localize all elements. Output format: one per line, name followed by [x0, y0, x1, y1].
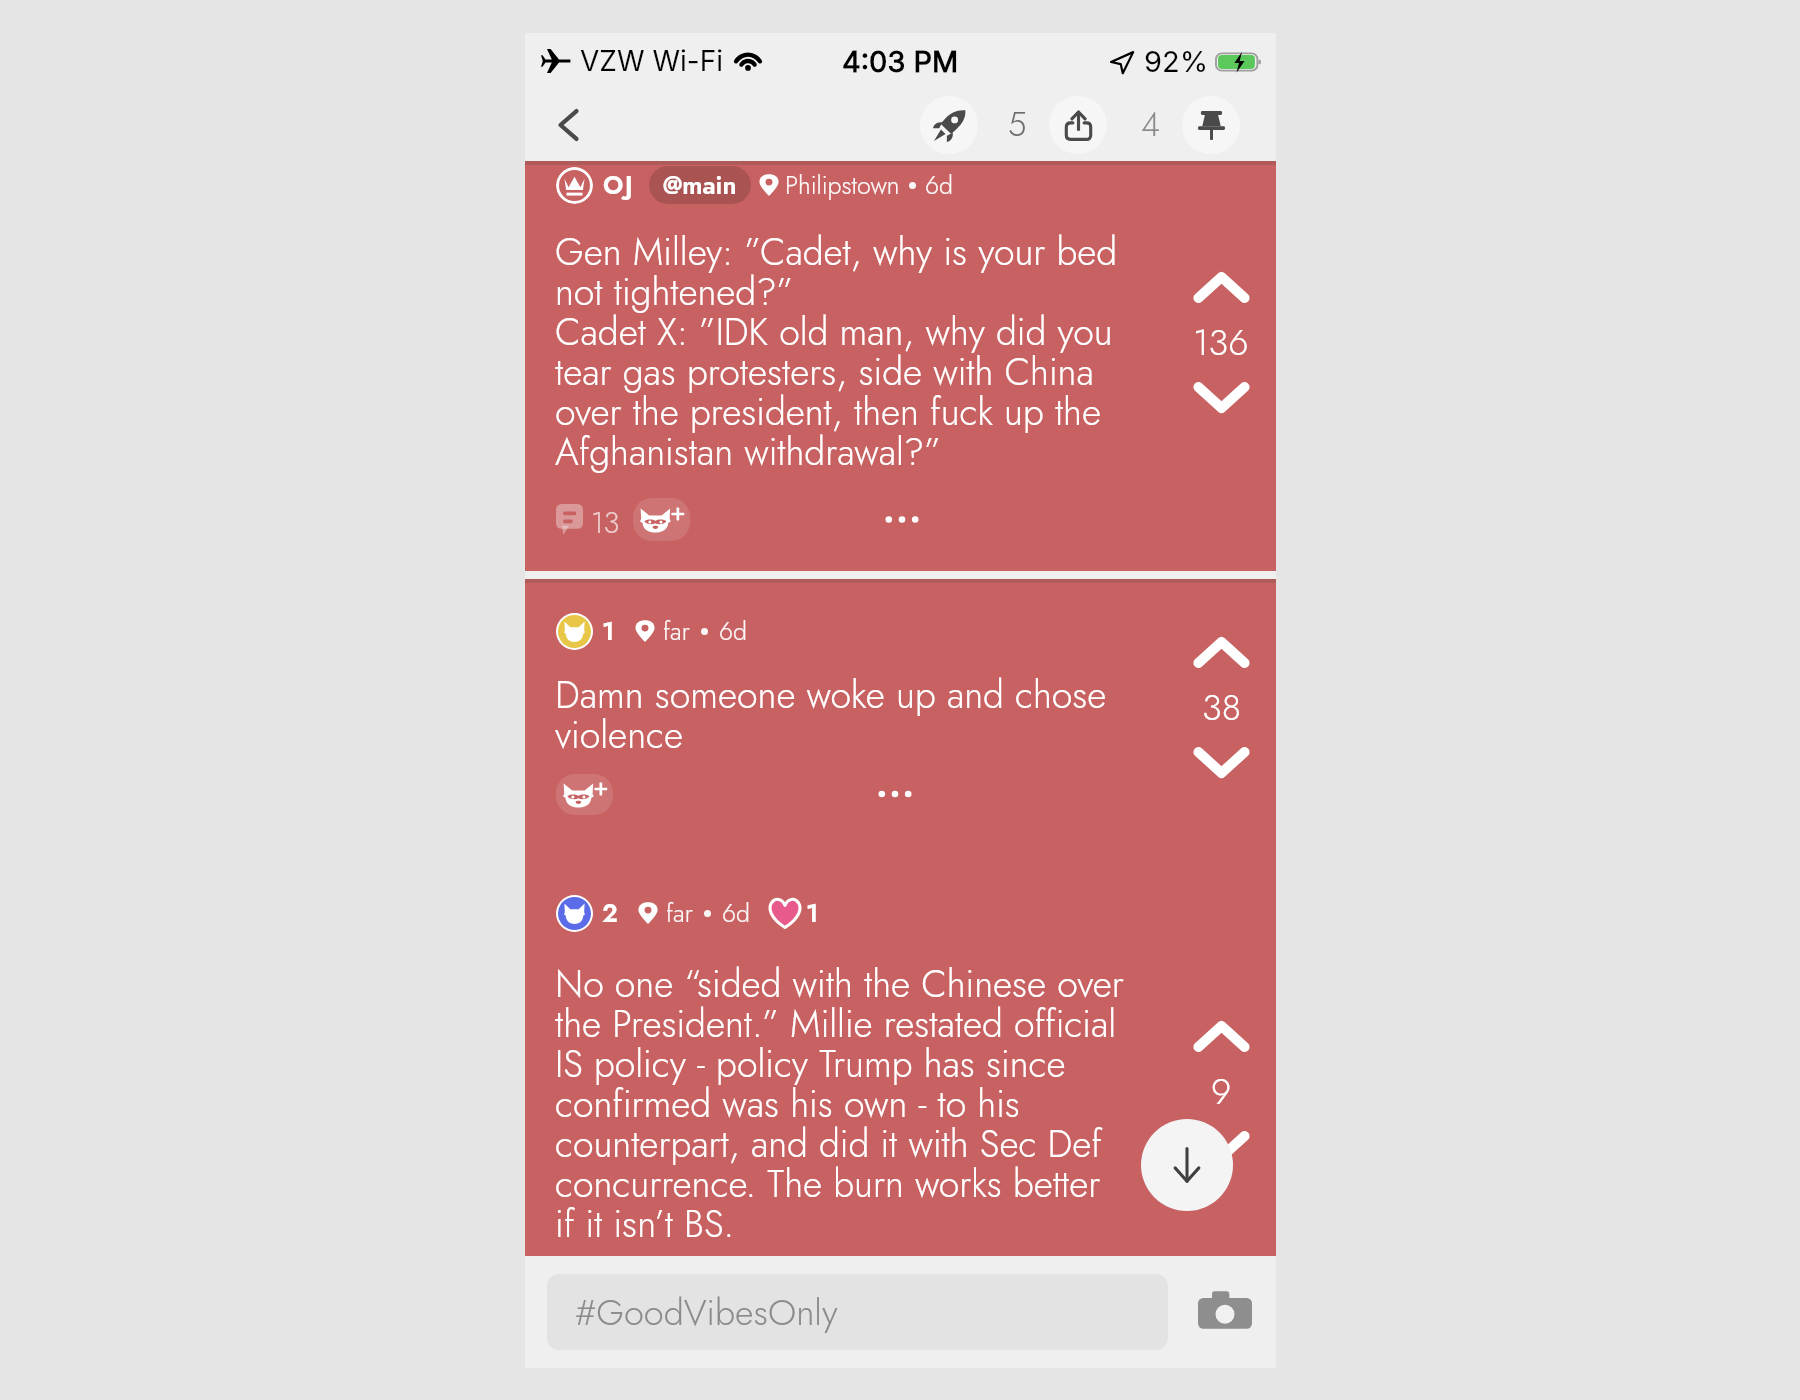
staticText: No one “sided with the Chinese over the …: [555, 957, 1124, 1251]
button[interactable]: Boost: [920, 96, 978, 154]
button[interactable]: More options: [865, 764, 925, 824]
button[interactable]: 13: [556, 498, 620, 541]
staticText: 136: [1193, 316, 1249, 368]
staticText: 92%: [1144, 44, 1209, 79]
button[interactable]: More options: [872, 498, 932, 541]
staticText: 2: [602, 895, 618, 931]
button[interactable]: Pin: [1182, 96, 1240, 154]
staticText: 13: [591, 502, 620, 537]
staticText: 6d: [925, 167, 953, 203]
button[interactable]: Add reaction: [556, 774, 613, 815]
staticText: 4: [1141, 101, 1160, 149]
button[interactable]: Downvote: [1182, 733, 1260, 791]
staticText: 38: [1202, 681, 1241, 733]
button[interactable]: #GoodVibesOnly: [547, 1274, 1168, 1350]
staticText: VZW Wi-Fi: [580, 44, 723, 78]
staticText: Damn someone woke up and chose violence: [555, 668, 1107, 762]
button[interactable]: Camera: [1194, 1281, 1256, 1343]
button[interactable]: Scroll to bottom: [1141, 1119, 1233, 1211]
staticText: Gen Milley: ”Cadet, why is your bed not …: [555, 225, 1118, 479]
staticText: Philipstown: [785, 167, 900, 203]
staticText: 6d: [722, 895, 750, 931]
staticText: far: [666, 895, 693, 931]
staticText: OJ: [603, 167, 635, 203]
button[interactable]: Back: [539, 95, 599, 155]
staticText: 1: [602, 613, 615, 649]
button[interactable]: Upvote: [1182, 623, 1260, 681]
staticText: far: [663, 613, 690, 649]
staticText: 9: [1211, 1065, 1232, 1117]
staticText: 1: [806, 895, 819, 931]
button[interactable]: Upvote: [1182, 258, 1260, 316]
staticText: 4:03 PM: [842, 44, 959, 79]
staticText: 5: [1008, 101, 1027, 149]
staticText: #GoodVibesOnly: [575, 1286, 838, 1338]
button[interactable]: Downvote: [1182, 368, 1260, 426]
button[interactable]: Upvote: [1182, 1007, 1260, 1065]
button[interactable]: @main: [649, 166, 751, 204]
staticText: 6d: [719, 613, 747, 649]
button[interactable]: Downvote: [1182, 1117, 1260, 1175]
button[interactable]: Share: [1049, 96, 1107, 154]
staticText: @main: [663, 167, 737, 203]
button[interactable]: Add reaction: [633, 498, 690, 541]
